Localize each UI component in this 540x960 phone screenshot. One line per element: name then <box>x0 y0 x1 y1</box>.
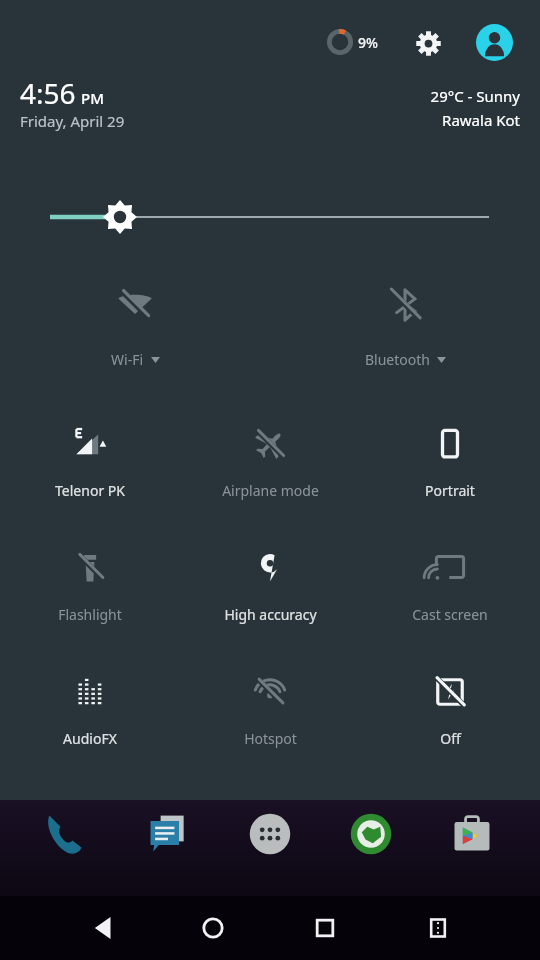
button[interactable]: Phone <box>40 808 92 860</box>
button[interactable]: 4:56 <box>20 74 104 112</box>
staticText: Hotspot <box>244 729 297 748</box>
button[interactable]: Hotspot <box>180 663 360 773</box>
button[interactable]: Home <box>186 901 240 955</box>
button[interactable]: Settings <box>410 25 446 61</box>
button[interactable]: Telenor PK <box>0 415 180 525</box>
button[interactable]: AudioFX <box>0 663 180 773</box>
staticText: 29°C - Sunny <box>430 86 520 106</box>
staticText: Friday, April 29 <box>20 111 125 131</box>
button[interactable]: Menu <box>411 901 465 955</box>
button[interactable]: Wi-Fi <box>0 272 270 392</box>
button[interactable]: 29°C - Sunny <box>300 86 520 130</box>
staticText: High accuracy <box>224 605 317 624</box>
button[interactable]: Airplane mode <box>180 415 360 525</box>
button[interactable]: Play Store <box>446 808 498 860</box>
other: Battery 9 percent <box>326 28 354 56</box>
staticText: Bluetooth <box>365 350 430 369</box>
staticText: 9% <box>358 33 378 52</box>
staticText: 4:56 <box>20 74 76 112</box>
staticText: Portrait <box>425 481 475 500</box>
staticText: Rawala Kot <box>442 110 520 130</box>
button[interactable]: Battery 9 percent <box>326 28 378 56</box>
staticText: PM <box>81 88 104 108</box>
staticText: Off <box>440 729 461 748</box>
button[interactable]: Browser <box>345 808 397 860</box>
staticText: Wi-Fi <box>111 350 144 369</box>
button[interactable]: Brightness <box>0 190 540 246</box>
button[interactable]: Cast screen <box>360 539 540 649</box>
staticText: Flashlight <box>58 605 122 624</box>
button[interactable]: Portrait <box>360 415 540 525</box>
button[interactable]: Apps <box>244 808 296 860</box>
button[interactable]: High accuracy <box>180 539 360 649</box>
button[interactable]: Bluetooth <box>270 272 540 392</box>
staticText: AudioFX <box>63 729 117 748</box>
staticText: Airplane mode <box>222 481 319 500</box>
button[interactable]: Messaging <box>142 808 194 860</box>
button[interactable]: Off <box>360 663 540 773</box>
button[interactable]: Recents <box>298 901 352 955</box>
button[interactable]: Flashlight <box>0 539 180 649</box>
button[interactable]: Back <box>76 901 130 955</box>
button[interactable]: User <box>476 24 513 61</box>
staticText: Cast screen <box>412 605 488 624</box>
staticText: Telenor PK <box>55 481 125 500</box>
